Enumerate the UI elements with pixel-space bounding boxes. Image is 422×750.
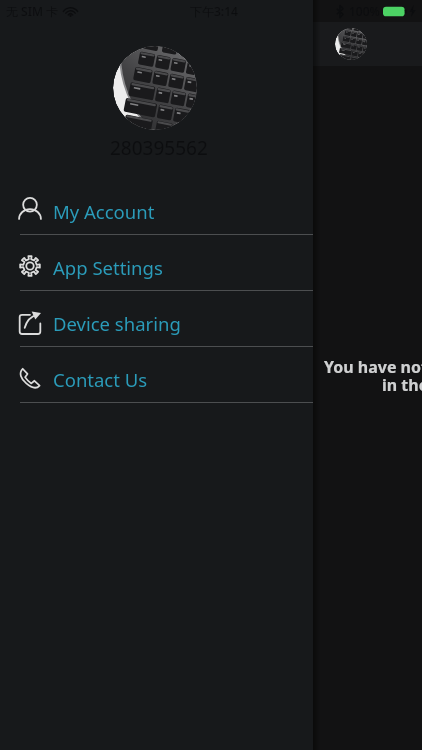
staticText: 无 SIM 卡 [6, 3, 59, 19]
other: Device sharing [18, 310, 42, 334]
staticText: Contact Us [53, 367, 148, 392]
button[interactable]: Account [0, 179, 313, 234]
other: Settings [18, 254, 42, 278]
button[interactable]: Contact Us [0, 347, 313, 402]
other: Contact Us [18, 366, 42, 390]
button[interactable]: Profile picture [113, 46, 197, 130]
button[interactable]: Device sharing [0, 291, 313, 346]
button[interactable]: Profile [335, 28, 367, 60]
staticText: 280395562 [110, 135, 208, 161]
staticText: App Settings [53, 255, 163, 280]
staticText: 下午3:14 [190, 3, 238, 19]
staticText: Device sharing [53, 311, 181, 336]
staticText: My Account [53, 199, 155, 224]
other: Account [18, 197, 42, 221]
staticText: in the list [382, 374, 422, 396]
button[interactable]: Settings [0, 235, 313, 290]
staticText: You have not added any device [324, 356, 422, 378]
